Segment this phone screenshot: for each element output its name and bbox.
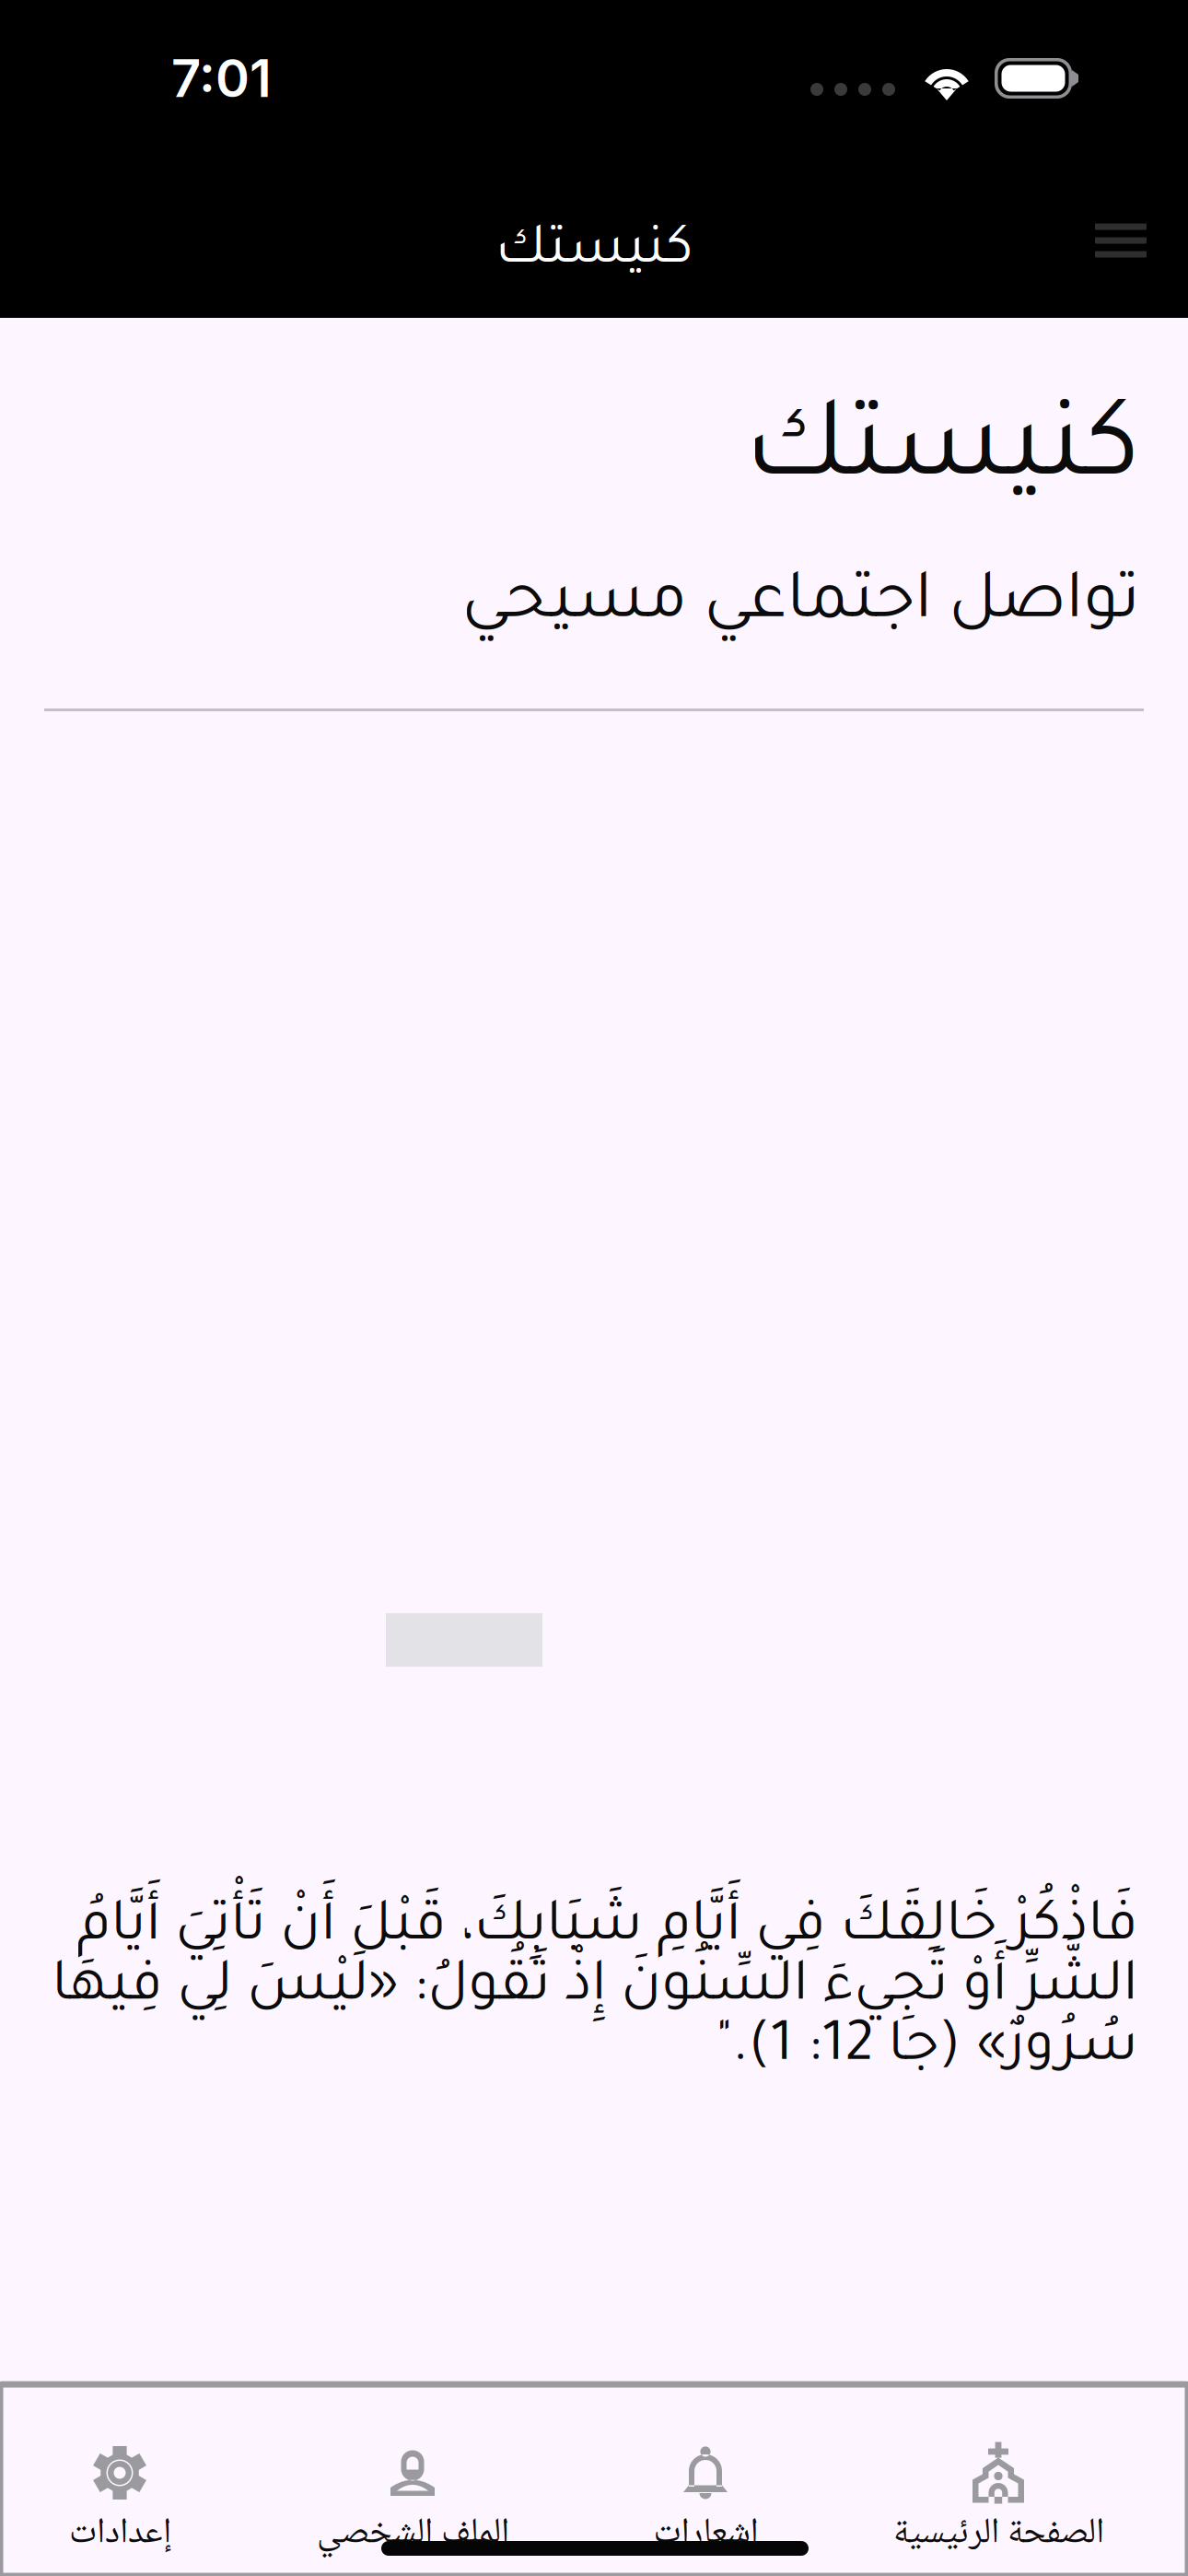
button[interactable]: الصفحة الرئيسية	[852, 2384, 1145, 2574]
staticText: 7:01	[171, 47, 272, 110]
staticText: تواصل اجتماعي مسيحي	[461, 571, 1139, 641]
staticText: الصفحة الرئيسية	[893, 2504, 1104, 2565]
button[interactable]: إعدادات	[0, 2384, 266, 2574]
staticText: إعدادات	[69, 2504, 171, 2565]
staticText: الملف الشخصي	[316, 2504, 509, 2565]
staticText: كنيستك	[495, 225, 693, 282]
button[interactable]: الملف الشخصي	[266, 2384, 559, 2574]
staticText: إشعارات	[653, 2504, 758, 2565]
staticText: فَاذْكُرْ خَالِقَكَ فِي أَيَّامِ شَبَابِ…	[52, 1900, 1137, 2080]
button[interactable]: إشعارات	[559, 2384, 852, 2574]
button[interactable]: القائمة	[1073, 203, 1169, 278]
staticText: كنيستك	[744, 399, 1139, 515]
